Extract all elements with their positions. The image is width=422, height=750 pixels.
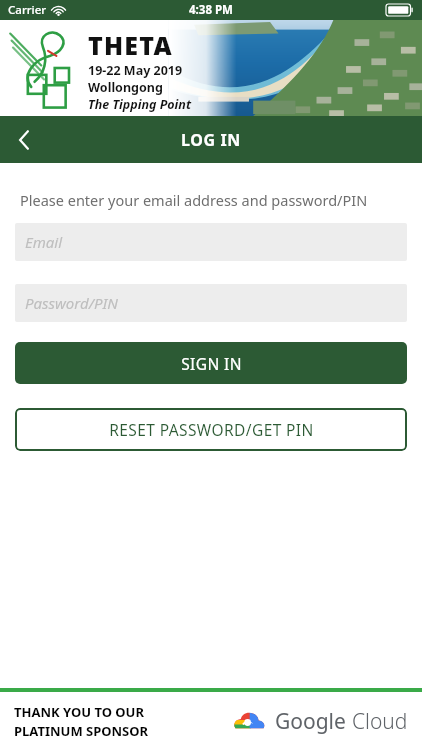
button[interactable]: SIGN IN	[15, 342, 407, 384]
staticText: 4:38 PM	[189, 2, 233, 18]
button[interactable]: Password/PIN	[15, 284, 407, 322]
staticText: Please enter your email address and pass…	[20, 190, 368, 210]
staticText: PLATINUM SPONSOR	[14, 722, 149, 740]
button[interactable]: Email	[15, 223, 407, 261]
staticText: RESET PASSWORD/GET PIN	[109, 419, 314, 440]
staticText: SIGN IN	[181, 353, 242, 374]
staticText: Wollongong	[88, 79, 163, 96]
button[interactable]: RESET PASSWORD/GET PIN	[15, 408, 407, 451]
staticText: THETA	[88, 28, 173, 62]
staticText: Google	[275, 707, 346, 736]
staticText: THANK YOU TO OUR	[14, 703, 144, 721]
staticText: Cloud	[352, 707, 408, 736]
staticText: LOG IN	[181, 129, 241, 151]
button[interactable]: Back	[0, 116, 48, 163]
staticText: Email	[25, 232, 63, 252]
staticText: The Tipping Point	[88, 96, 192, 113]
staticText: 19-22 May 2019	[88, 62, 183, 79]
button[interactable]: Google Cloud sponsor	[232, 707, 408, 736]
staticText: Carrier	[8, 2, 47, 18]
staticText: Password/PIN	[25, 293, 118, 313]
